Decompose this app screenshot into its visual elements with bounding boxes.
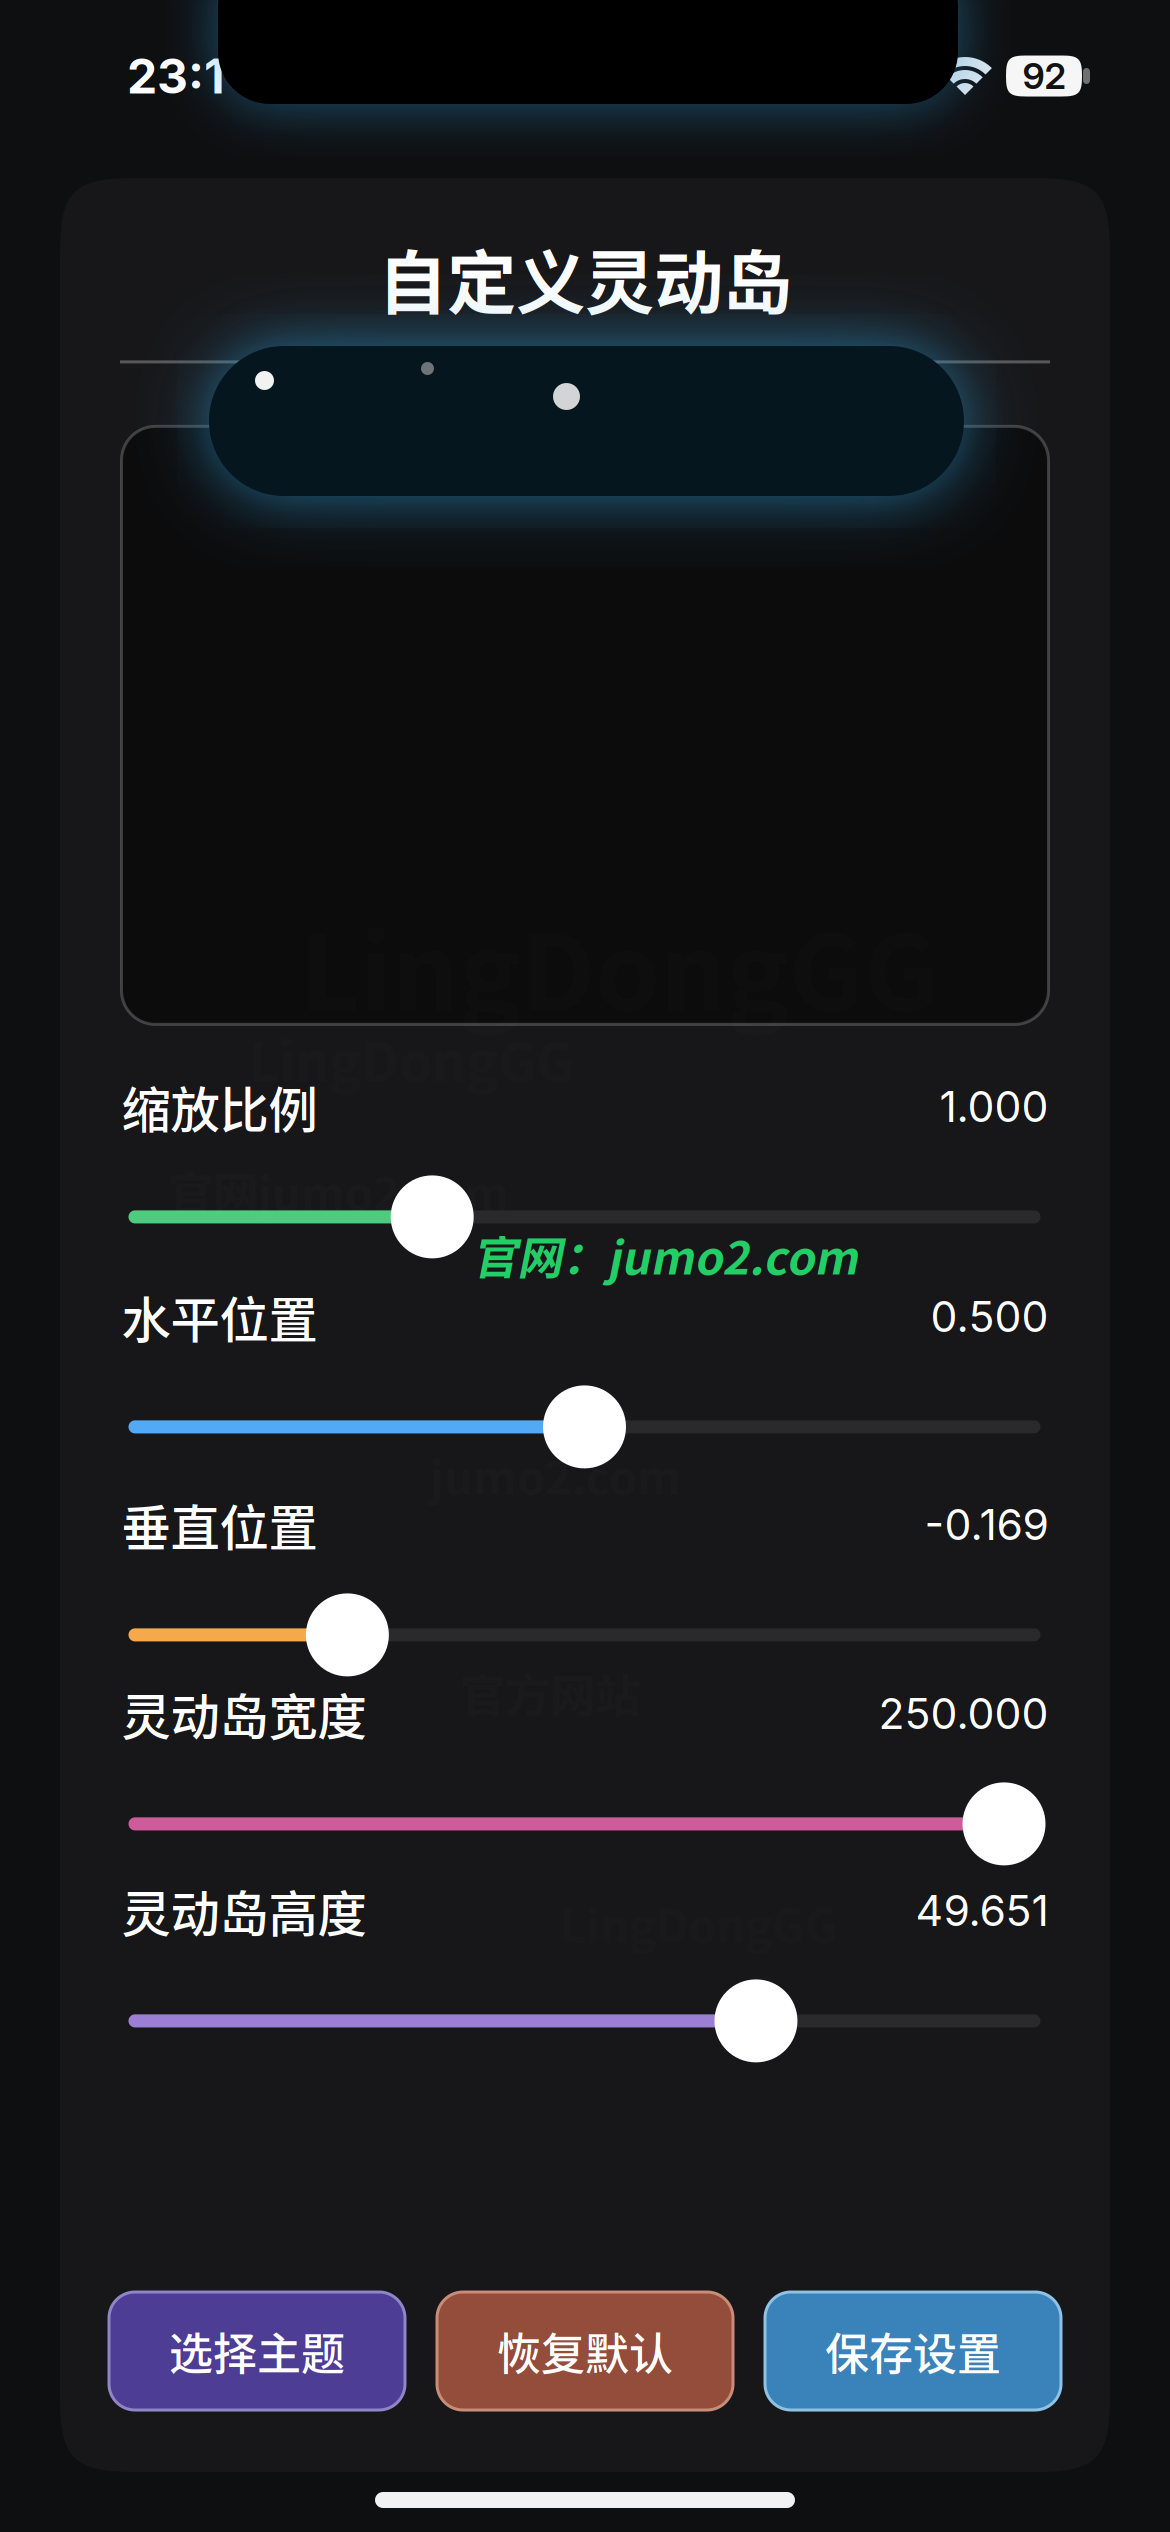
staticText: 0.500 — [930, 1291, 1048, 1342]
staticText: 垂直位置 — [121, 1489, 317, 1560]
staticText: 250.000 — [878, 1688, 1048, 1739]
staticText: 1.000 — [939, 1081, 1048, 1132]
staticText: 选择主题 — [169, 2319, 345, 2383]
staticText: 官网jumo2.com — [168, 1158, 509, 1224]
button[interactable]: 保存设置 — [765, 2292, 1061, 2410]
staticText: 缩放比例 — [121, 1071, 317, 1142]
staticText: 49.651 — [915, 1885, 1048, 1936]
staticText: 保存设置 — [825, 2319, 1001, 2383]
staticText: 水平位置 — [121, 1281, 317, 1352]
staticText: 灵动岛高度 — [121, 1875, 366, 1946]
staticText: -0.169 — [924, 1499, 1048, 1550]
staticText: jumo2.com — [430, 1442, 681, 1508]
staticText: LingDongGG — [248, 1020, 574, 1097]
staticText: LingDongGG — [300, 890, 939, 1041]
staticText: 自定义灵动岛 — [378, 228, 792, 328]
staticText: 灵动岛宽度 — [121, 1678, 366, 1749]
staticText: 恢复默认 — [497, 2319, 673, 2383]
staticText: 官网：jumo2.com — [472, 1222, 858, 1288]
button[interactable]: 恢复默认 — [437, 2292, 733, 2410]
button[interactable]: 选择主题 — [109, 2292, 405, 2410]
staticText: 92 — [1022, 54, 1065, 98]
staticText: 23:1 — [127, 47, 225, 105]
